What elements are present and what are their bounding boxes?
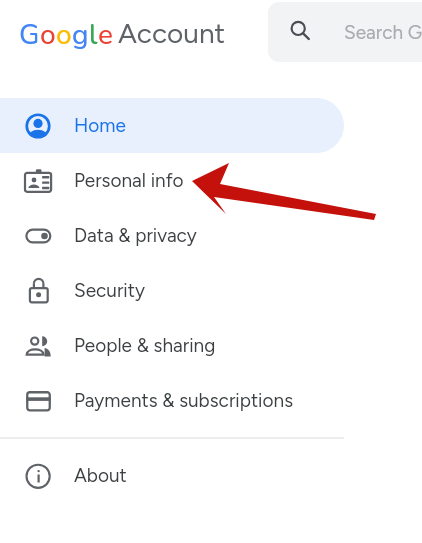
staticText: About: [74, 464, 127, 487]
button[interactable]: Personal info: [0, 153, 344, 208]
button[interactable]: Data & privacy: [0, 208, 344, 263]
staticText: Data & privacy: [74, 224, 197, 247]
staticText: o: [56, 16, 72, 54]
staticText: Account: [118, 16, 226, 50]
button[interactable]: Payments & subscriptions: [0, 373, 344, 428]
other: Search: [288, 19, 314, 45]
staticText: Home: [74, 114, 126, 137]
button[interactable]: Security: [0, 263, 344, 318]
staticText: Personal info: [74, 169, 184, 192]
button[interactable]: Search: [268, 2, 422, 62]
button[interactable]: People & sharing: [0, 318, 344, 373]
staticText: l: [89, 16, 98, 54]
staticText: Search G: [344, 21, 422, 44]
button[interactable]: Home: [0, 98, 344, 153]
staticText: o: [40, 16, 56, 54]
staticText: G: [19, 16, 40, 54]
staticText: People & sharing: [74, 334, 216, 357]
staticText: e: [98, 16, 113, 54]
staticText: Payments & subscriptions: [74, 389, 294, 412]
button[interactable]: About: [0, 448, 344, 503]
staticText: g: [72, 16, 89, 54]
staticText: Security: [74, 279, 145, 302]
